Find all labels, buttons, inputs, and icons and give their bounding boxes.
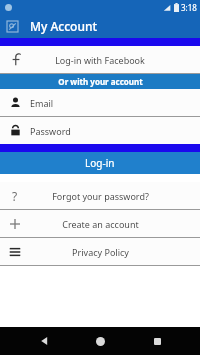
staticText: Email (30, 97, 54, 109)
button[interactable]: Password (0, 117, 200, 144)
button[interactable]: Privacy Policy (0, 238, 200, 265)
staticText: Log-in with Facebook (55, 54, 145, 66)
button[interactable]: Log-in with Facebook (0, 46, 200, 73)
staticText: 3:18 (181, 2, 197, 13)
staticText: My Account (30, 18, 98, 34)
staticText: Or with your account (58, 76, 143, 87)
staticText: Password (30, 125, 71, 137)
button[interactable]: ? (0, 182, 200, 209)
staticText: Log-in (85, 156, 115, 170)
button[interactable]: Create an account (0, 210, 200, 237)
button[interactable]: Log-in (0, 152, 200, 174)
button[interactable]: Recent apps (144, 328, 170, 354)
button[interactable]: Email (0, 89, 200, 116)
staticText: Forgot your password? (52, 190, 149, 202)
staticText: Create an account (62, 218, 139, 230)
button[interactable]: Home (87, 328, 113, 354)
staticText: ? (12, 188, 18, 204)
button[interactable]: App logo (4, 18, 20, 34)
staticText: Privacy Policy (72, 246, 129, 258)
button[interactable]: Back (31, 328, 57, 354)
